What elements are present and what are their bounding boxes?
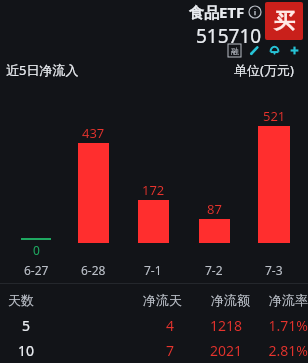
staticText: 4	[45, 316, 174, 335]
button[interactable]: 添加	[288, 44, 301, 57]
staticText: 2.81%	[252, 341, 308, 360]
button[interactable]: 编辑	[248, 44, 261, 57]
staticText: 净流天	[53, 292, 182, 308]
staticText: 融	[231, 46, 239, 56]
staticText: 437	[82, 124, 105, 142]
staticText: 净流率	[260, 292, 308, 308]
staticText: 172	[142, 181, 165, 199]
button[interactable]: 提醒	[268, 44, 281, 57]
staticText: 10	[8, 341, 44, 360]
staticText: 食品ETF	[189, 2, 245, 22]
staticText: 7-2	[205, 262, 223, 278]
button[interactable]: 详情	[248, 5, 262, 19]
staticText: 7-1	[144, 262, 162, 278]
staticText: 515710	[196, 23, 262, 49]
staticText: 单位(万元)	[234, 61, 294, 79]
staticText: 7-3	[265, 262, 283, 278]
staticText: 1218	[184, 316, 242, 335]
staticText: 521	[263, 107, 286, 125]
staticText: 6-27	[24, 262, 49, 278]
staticText: 买	[274, 8, 295, 34]
staticText: 2021	[184, 341, 242, 360]
staticText: 0	[33, 242, 40, 258]
staticText: 5	[8, 316, 44, 335]
button[interactable]: 买	[265, 2, 303, 40]
staticText: 87	[207, 200, 222, 218]
staticText: 1.71%	[252, 316, 308, 335]
staticText: 7	[45, 341, 174, 360]
staticText: 近5日净流入	[6, 61, 79, 79]
button[interactable]: 融资融券	[228, 44, 241, 57]
staticText: 天数	[8, 292, 52, 308]
staticText: 6-28	[81, 262, 106, 278]
staticText: 净流额	[192, 292, 250, 308]
